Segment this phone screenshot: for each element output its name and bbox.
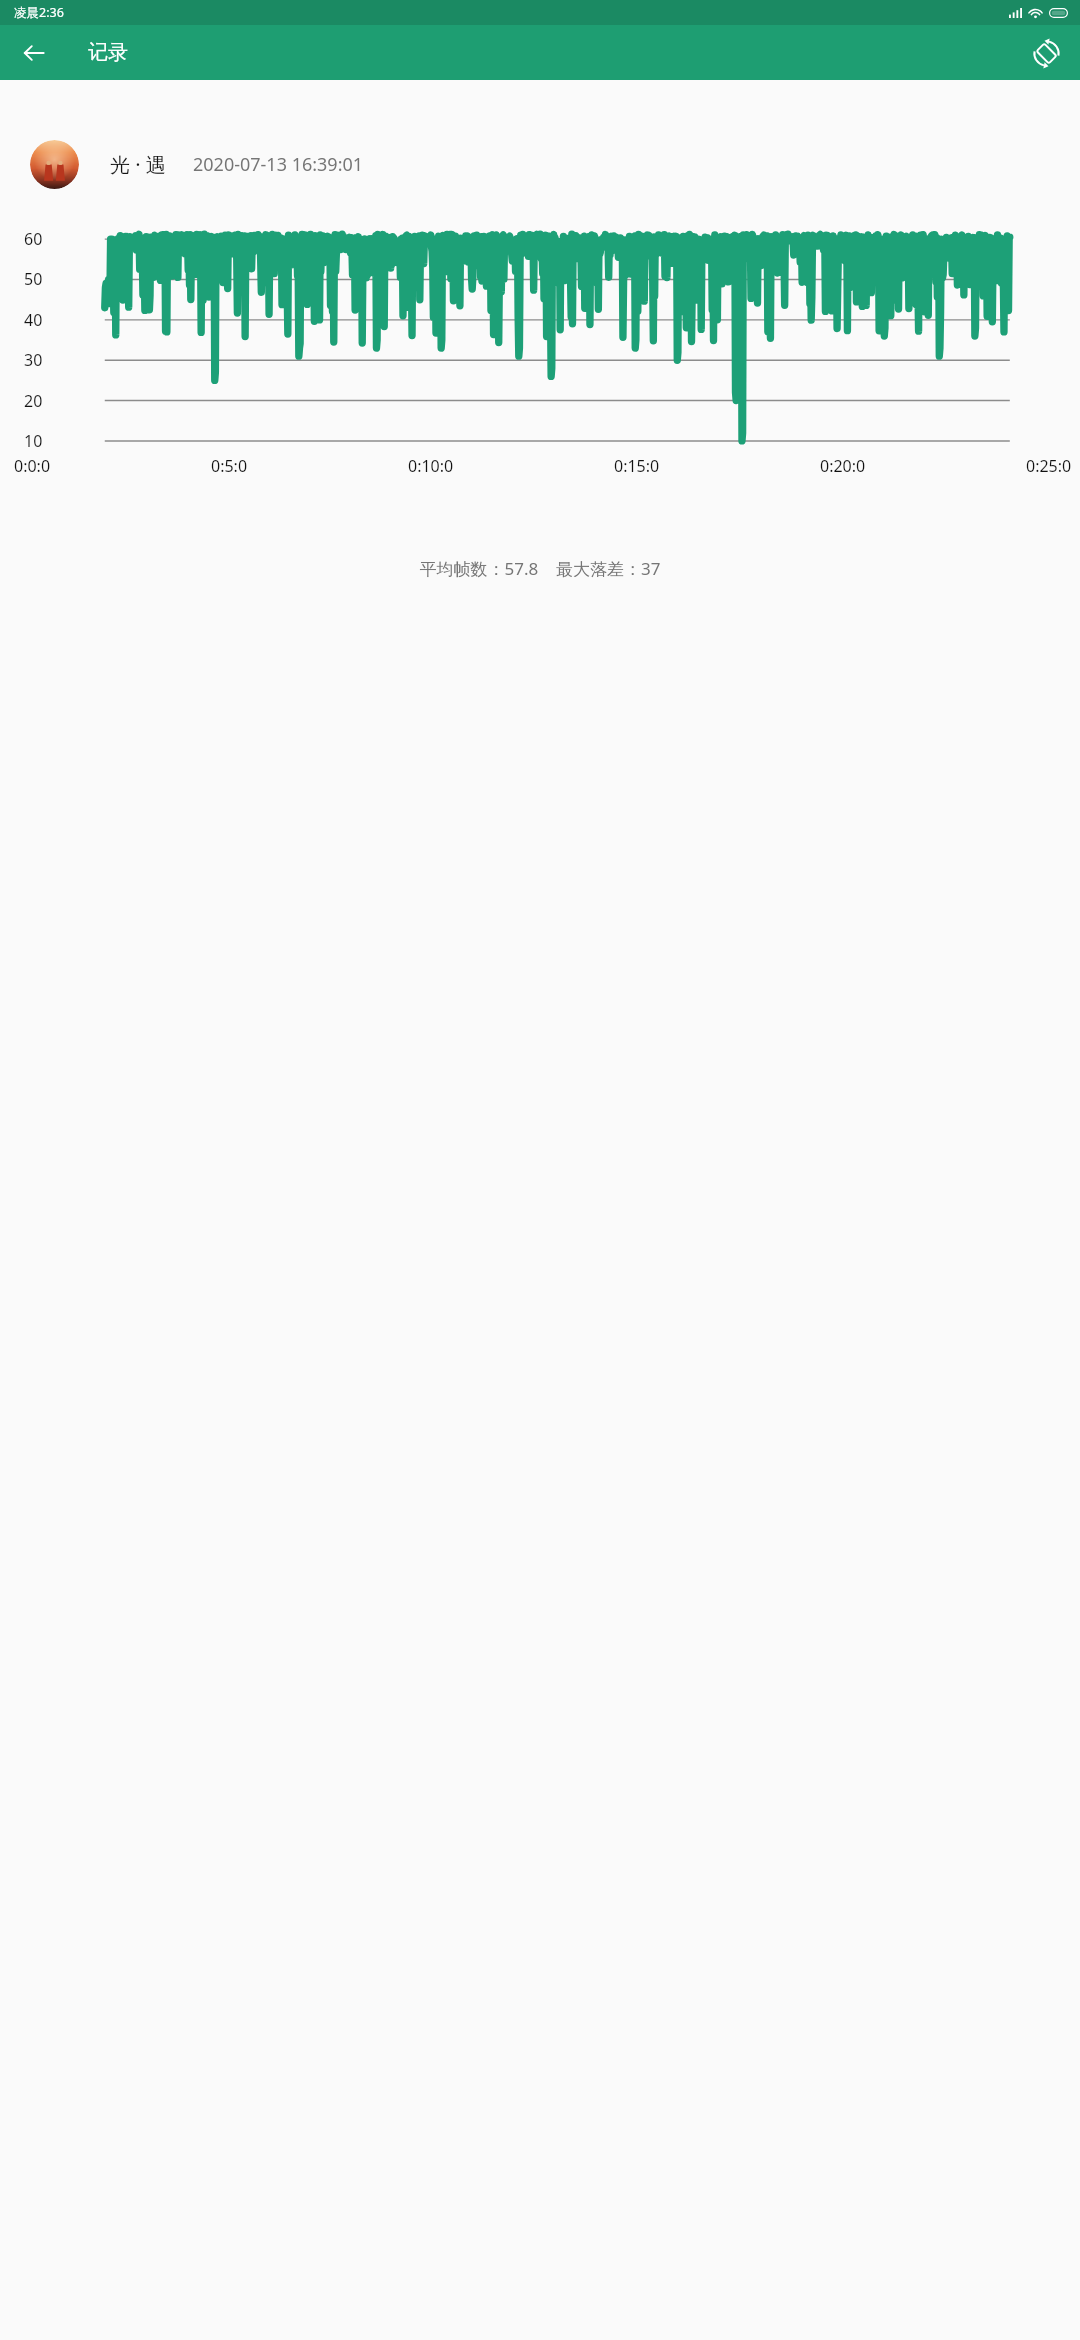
staticText: 60 [24, 228, 43, 250]
staticText: 0:20:0 [820, 455, 866, 477]
staticText: 50 [24, 268, 43, 290]
staticText: 0:0:0 [14, 455, 51, 477]
staticText: 记录 [88, 40, 128, 65]
staticText: 平均帧数：57.8 最大落差：37 [0, 557, 1080, 580]
staticText: 2020-07-13 16:39:01 [193, 152, 364, 177]
staticText: 光 · 遇 [110, 151, 166, 178]
button[interactable]: 返回 [10, 29, 58, 77]
staticText: 凌晨2:36 [14, 4, 64, 21]
staticText: 0:15:0 [614, 455, 660, 477]
staticText: 0:25:0 [1026, 455, 1072, 477]
staticText: 20 [24, 390, 43, 412]
staticText: 30 [24, 349, 43, 371]
staticText: 0:5:0 [211, 455, 248, 477]
staticText: 0:10:0 [408, 455, 454, 477]
button[interactable]: 屏幕旋转 [1022, 29, 1070, 77]
staticText: 40 [24, 309, 43, 331]
staticText: 10 [24, 430, 43, 452]
